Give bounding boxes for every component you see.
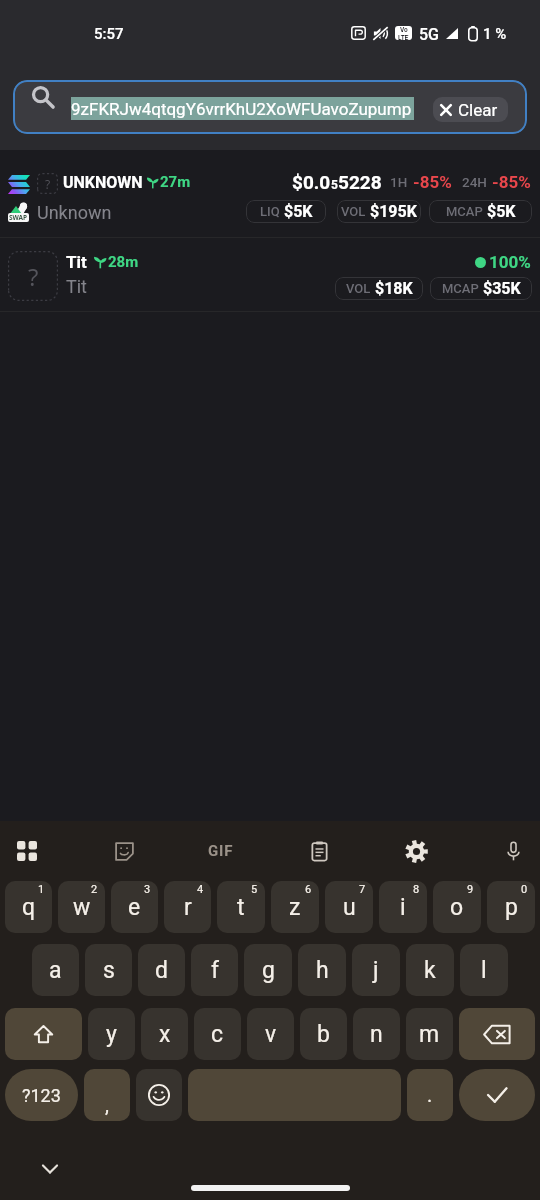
staticText: r [184,894,192,921]
staticText: n [370,1021,383,1048]
button[interactable]: Clear [433,97,508,122]
button[interactable]: z [271,881,319,933]
button[interactable]: s [85,944,132,996]
staticText: Vo [400,26,408,34]
staticText: UNKNOWN [63,173,143,192]
button[interactable]: Shift [5,1008,82,1060]
button[interactable]: Voice input [493,827,533,875]
button[interactable]: . [407,1069,453,1121]
button[interactable]: ?123 [5,1069,78,1121]
button[interactable]: Search [13,80,527,134]
staticText: f [211,957,219,984]
button[interactable]: i [379,881,427,933]
button[interactable]: MCAP [430,277,532,300]
staticText: ? [28,260,39,293]
staticText: 5228 [338,171,382,193]
button[interactable]: Backspace [459,1008,535,1060]
button[interactable]: k [406,944,454,996]
staticText: m [419,1021,440,1048]
button[interactable]: , [84,1069,130,1121]
staticText: 24H [462,174,487,190]
staticText: 0 [521,883,528,896]
button[interactable]: l [460,944,508,996]
button[interactable]: p [487,881,535,933]
button[interactable]: Stickers [104,827,144,875]
button[interactable]: u [325,881,373,933]
staticText: 28m [108,253,139,271]
staticText: 1 [38,883,45,896]
button[interactable]: q [5,881,52,933]
button[interactable]: o [433,881,481,933]
button[interactable]: v [247,1008,294,1060]
staticText: b [317,1021,330,1048]
staticText: VOL [341,204,366,219]
button[interactable]: y [88,1008,135,1060]
button[interactable]: f [191,944,238,996]
button[interactable]: h [298,944,346,996]
button[interactable]: Hide keyboard [34,1153,66,1185]
button[interactable]: m [406,1008,453,1060]
other: Search [31,85,55,109]
button[interactable]: VOL [337,200,421,223]
button[interactable]: ? [0,150,540,237]
button[interactable]: r [164,881,211,933]
button[interactable]: g [244,944,292,996]
staticText: Unknown [37,202,112,223]
button[interactable]: x [141,1008,188,1060]
button[interactable]: c [194,1008,241,1060]
button[interactable]: VOL [335,277,423,300]
button[interactable]: a [32,944,79,996]
staticText: 2 [91,883,98,896]
staticText: s [103,957,115,984]
button[interactable]: Space [188,1069,401,1121]
button[interactable]: Enter [459,1069,535,1121]
staticText: c [211,1021,224,1048]
staticText: $35K [483,279,521,298]
staticText: . [427,1083,433,1106]
staticText: $5K [487,202,516,221]
staticText: t [237,894,245,921]
staticText: l [481,957,487,984]
staticText: 4 [197,883,204,896]
staticText: 9 [467,883,474,896]
staticText: x [159,1021,171,1048]
staticText: , [105,1093,109,1116]
staticText: e [128,894,141,921]
staticText: 8 [413,883,420,896]
button[interactable]: Emoji [136,1069,182,1121]
button[interactable]: ? [0,238,540,311]
button[interactable]: t [217,881,265,933]
button[interactable]: d [138,944,185,996]
button[interactable]: e [111,881,158,933]
button[interactable]: LIQ [246,200,326,223]
button[interactable]: MCAP [429,200,532,223]
staticText: 100% [489,252,531,272]
staticText: o [450,894,464,921]
staticText: Tit [66,276,88,297]
button[interactable]: Settings [396,827,436,875]
staticText: j [373,957,379,984]
staticText: ? [45,176,51,192]
button[interactable]: Apps [7,827,47,875]
button[interactable]: j [352,944,400,996]
button[interactable]: Clipboard [299,827,339,875]
button[interactable]: b [300,1008,347,1060]
button[interactable]: GIF [201,827,241,875]
staticText: h [316,957,329,984]
staticText: $0.0 [292,171,331,193]
staticText: ?123 [22,1085,61,1106]
staticText: q [22,894,36,921]
staticText: 5:57 [94,25,124,43]
staticText: y [106,1021,117,1048]
staticText: z [289,894,301,921]
staticText: GIF [208,842,234,860]
staticText: 6 [305,883,312,896]
button[interactable]: n [353,1008,400,1060]
staticText: 27m [160,173,191,191]
staticText: 9zFKRJw4qtqgY6vrrKhU2XoWFUavoZupump [71,99,412,119]
staticText: MCAP [442,281,479,296]
staticText: $195K [370,202,417,221]
button[interactable]: w [58,881,105,933]
staticText: p [505,894,518,921]
staticText: $18K [375,279,413,298]
